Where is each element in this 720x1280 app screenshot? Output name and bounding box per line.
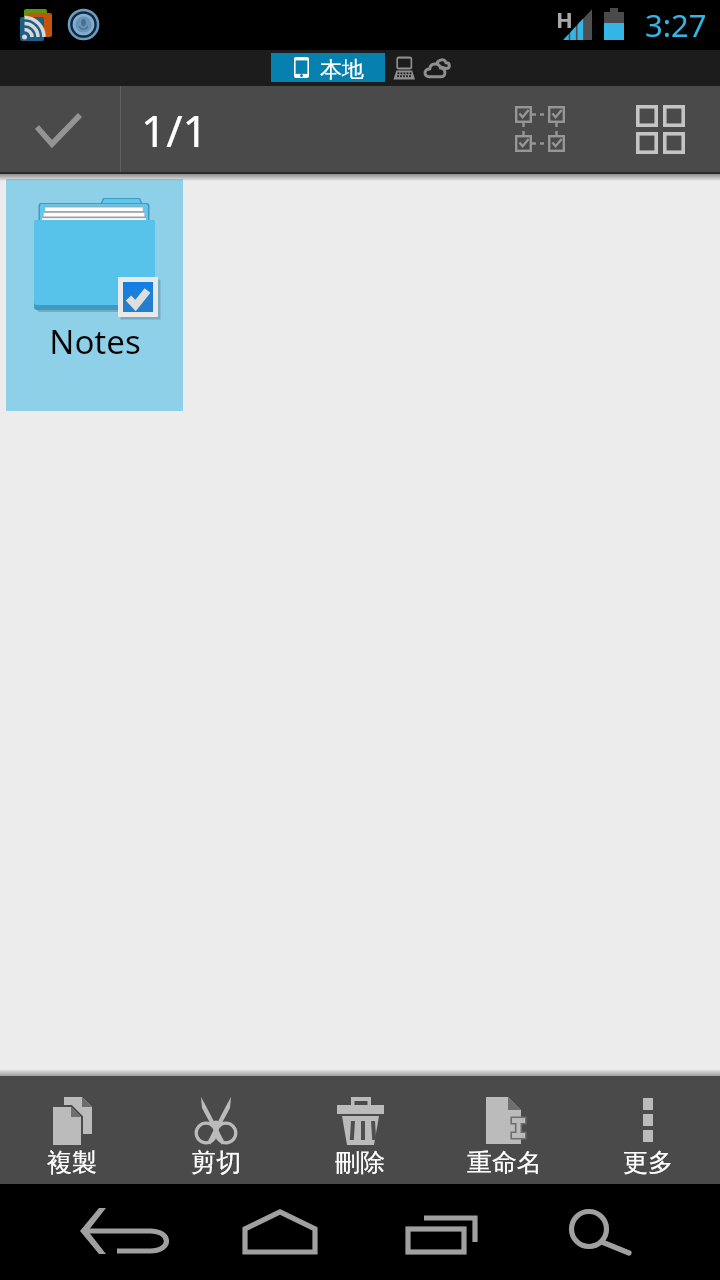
- button[interactable]: Back: [36, 1184, 180, 1280]
- button[interactable]: Change view: [616, 86, 704, 172]
- button[interactable]: 本地: [271, 53, 385, 82]
- button[interactable]: 複製: [0, 1076, 144, 1184]
- staticText: 刪除: [335, 1147, 385, 1178]
- button[interactable]: Recent apps: [370, 1184, 514, 1280]
- staticText: 重命名: [467, 1147, 542, 1178]
- button[interactable]: 重命名: [432, 1076, 576, 1184]
- button[interactable]: 刪除: [288, 1076, 432, 1184]
- button[interactable]: Network: [393, 55, 417, 81]
- staticText: 複製: [47, 1147, 97, 1178]
- button[interactable]: Done: [0, 86, 120, 172]
- button[interactable]: Notes: [6, 179, 183, 411]
- staticText: 本地: [320, 56, 364, 84]
- staticText: 3:27: [645, 4, 707, 46]
- button[interactable]: Home: [208, 1184, 352, 1280]
- staticText: 1/1: [141, 100, 208, 160]
- staticText: 更多: [623, 1147, 673, 1178]
- staticText: Notes: [49, 319, 141, 364]
- button[interactable]: Search: [520, 1184, 664, 1280]
- button[interactable]: 剪切: [144, 1076, 288, 1184]
- staticText: H: [556, 4, 573, 34]
- button[interactable]: 更多: [576, 1076, 720, 1184]
- staticText: 剪切: [191, 1147, 241, 1178]
- button[interactable]: Cloud storage: [423, 55, 451, 81]
- button[interactable]: Multi select: [494, 86, 586, 172]
